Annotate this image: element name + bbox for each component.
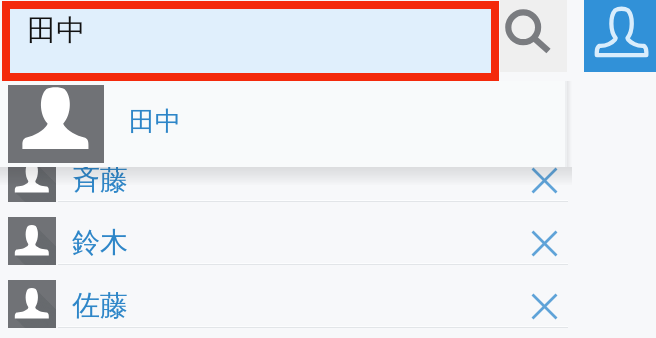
button[interactable]: Remove 佐藤 [520, 283, 568, 327]
staticText: 田中 [27, 12, 85, 49]
button[interactable]: Remove 斉藤 [520, 157, 568, 201]
staticText: 佐藤 [72, 288, 128, 323]
staticText: 田中 [129, 105, 181, 138]
button[interactable]: 佐藤 [0, 275, 656, 338]
button[interactable]: Account [584, 0, 656, 72]
button[interactable]: Remove 鈴木 [520, 220, 568, 264]
button[interactable]: Search [500, 0, 567, 72]
staticText: 鈴木 [72, 225, 128, 260]
button[interactable]: 田中 [10, 9, 491, 73]
button[interactable]: 斉藤 [0, 149, 656, 212]
button[interactable]: 田中 [0, 81, 567, 167]
staticText: 斉藤 [72, 162, 128, 197]
button[interactable]: 鈴木 [0, 212, 656, 275]
